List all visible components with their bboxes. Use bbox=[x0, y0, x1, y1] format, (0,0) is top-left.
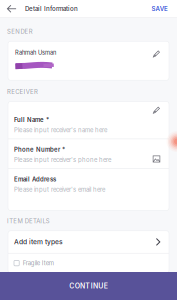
staticText: Add item types bbox=[14, 238, 63, 246]
button[interactable]: Back bbox=[2, 0, 21, 18]
staticText: RECEIVER bbox=[7, 88, 38, 96]
button[interactable]: Edit sender bbox=[152, 49, 161, 58]
staticText: SAVE bbox=[151, 5, 168, 12]
staticText: Phone Number * bbox=[14, 146, 65, 153]
staticText: Detail Information bbox=[25, 5, 78, 12]
button[interactable]: Fragile Item bbox=[8, 254, 169, 273]
staticText: Please input receiver's email here bbox=[14, 186, 105, 193]
staticText: Fragile Item bbox=[23, 259, 54, 267]
staticText: Rahmah Usman bbox=[15, 49, 56, 56]
button[interactable]: CONTINUE bbox=[0, 272, 177, 300]
button[interactable]: Edit receiver bbox=[152, 105, 161, 114]
staticText: Please input receiver's name here bbox=[14, 126, 107, 134]
staticText: ITEM DETAILS bbox=[7, 217, 50, 225]
button[interactable]: Choose from contacts bbox=[152, 154, 161, 163]
staticText: CONTINUE bbox=[69, 282, 108, 290]
staticText: Please input receiver's phone here bbox=[14, 156, 111, 163]
button[interactable]: SAVE bbox=[142, 0, 177, 18]
staticText: SENDER bbox=[7, 28, 33, 35]
staticText: Full Name * bbox=[14, 116, 49, 124]
staticText: Email Address bbox=[14, 176, 56, 183]
button[interactable]: Add item types bbox=[8, 231, 169, 253]
